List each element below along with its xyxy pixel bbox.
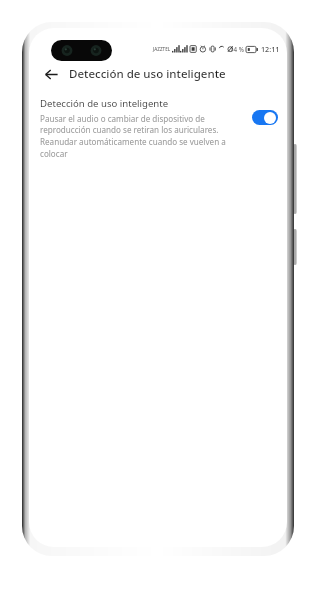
staticText: Detección de uso inteligente — [69, 66, 226, 82]
staticText: Pausar el audio o cambiar de dispositivo… — [40, 113, 237, 159]
button[interactable]: Detección de uso inteligente — [29, 95, 287, 165]
staticText: 14 % — [230, 45, 244, 53]
button[interactable]: Atrás — [40, 63, 62, 85]
staticText: Detección de uso inteligente — [40, 97, 169, 110]
staticText: 12:11 — [261, 44, 280, 54]
staticText: JAZZTEL — [153, 46, 171, 52]
button[interactable]: Activar detección de uso inteligente — [252, 110, 278, 125]
